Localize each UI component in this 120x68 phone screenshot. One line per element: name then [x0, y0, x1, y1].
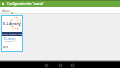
button[interactable]: Menu	[0, 0, 120, 7]
button[interactable]: Apps	[0, 7, 120, 13]
button[interactable]: Home	[57, 62, 64, 68]
button[interactable]: E-Library	[2, 16, 22, 51]
button[interactable]: Back	[43, 62, 50, 68]
staticText: YOUR DIGITAL LIBRARY	[2, 33, 22, 36]
button[interactable]: Recents	[69, 62, 76, 68]
staticText: Apps	[2, 8, 10, 12]
staticText: Codeware	[4, 40, 14, 43]
staticText: E-Library	[4, 37, 16, 41]
other: Android	[11, 12, 13, 14]
staticText: E-Library	[3, 21, 21, 26]
staticText: Configuration for "search"	[7, 2, 45, 6]
